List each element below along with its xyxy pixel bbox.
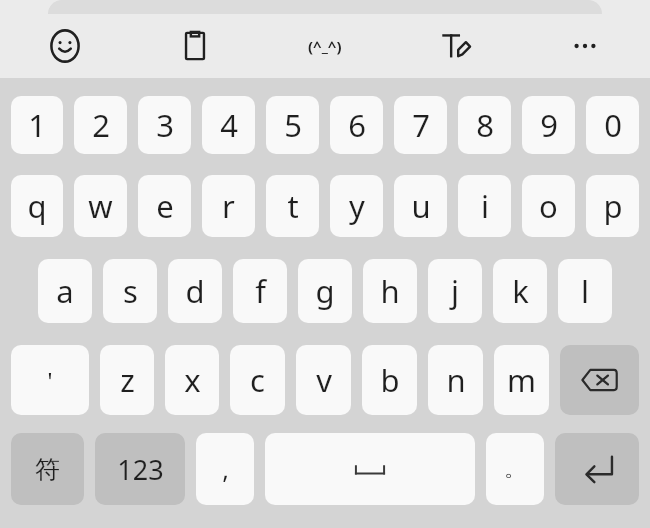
staticText: v bbox=[316, 359, 332, 401]
button[interactable]: Space bbox=[265, 433, 475, 505]
button[interactable]: a bbox=[38, 259, 92, 323]
staticText: 9 bbox=[540, 104, 558, 146]
button[interactable]: More options bbox=[520, 14, 650, 78]
staticText: 。 bbox=[504, 455, 526, 483]
staticText: 0 bbox=[604, 104, 622, 146]
staticText: a bbox=[56, 270, 74, 312]
staticText: 2 bbox=[92, 104, 110, 146]
staticText: 6 bbox=[348, 104, 366, 146]
button[interactable]: s bbox=[103, 259, 157, 323]
button[interactable]: c bbox=[230, 345, 285, 415]
staticText: j bbox=[451, 270, 459, 312]
staticText: q bbox=[27, 185, 47, 227]
staticText: 1 bbox=[28, 104, 46, 146]
staticText: k bbox=[512, 270, 529, 312]
button[interactable]: Clipboard bbox=[130, 14, 260, 78]
staticText: y bbox=[349, 185, 365, 227]
staticText: 符 bbox=[35, 454, 60, 485]
button[interactable]: 。 bbox=[486, 433, 544, 505]
staticText: x bbox=[184, 359, 201, 401]
staticText: f bbox=[255, 270, 266, 312]
staticText: 8 bbox=[476, 104, 494, 146]
staticText: o bbox=[539, 185, 558, 227]
staticText: s bbox=[123, 270, 138, 312]
button[interactable]: i bbox=[458, 175, 511, 237]
staticText: e bbox=[156, 185, 174, 227]
button[interactable]: 2 bbox=[74, 96, 127, 154]
staticText: c bbox=[250, 359, 265, 401]
staticText: (^_^) bbox=[308, 36, 342, 56]
button[interactable]: v bbox=[296, 345, 351, 415]
button[interactable]: p bbox=[586, 175, 639, 237]
button[interactable]: h bbox=[363, 259, 417, 323]
button[interactable]: k bbox=[493, 259, 547, 323]
staticText: z bbox=[120, 359, 135, 401]
staticText: l bbox=[581, 270, 589, 312]
staticText: g bbox=[315, 270, 335, 312]
button[interactable]: 4 bbox=[202, 96, 255, 154]
button[interactable]: z bbox=[100, 345, 154, 415]
button[interactable]: f bbox=[233, 259, 287, 323]
button[interactable]: 5 bbox=[266, 96, 319, 154]
button[interactable]: e bbox=[138, 175, 191, 237]
button[interactable]: 6 bbox=[330, 96, 383, 154]
button[interactable]: b bbox=[362, 345, 417, 415]
button[interactable]: o bbox=[522, 175, 575, 237]
staticText: d bbox=[185, 270, 205, 312]
button[interactable]: 0 bbox=[586, 96, 639, 154]
staticText: i bbox=[481, 185, 489, 227]
button[interactable]: 7 bbox=[394, 96, 447, 154]
button[interactable]: q bbox=[11, 175, 63, 237]
button[interactable]: Emoji bbox=[0, 14, 130, 78]
staticText: 4 bbox=[220, 104, 238, 146]
button[interactable]: 3 bbox=[138, 96, 191, 154]
button[interactable]: 9 bbox=[522, 96, 575, 154]
button[interactable]: d bbox=[168, 259, 222, 323]
button[interactable]: u bbox=[394, 175, 447, 237]
button[interactable]: 符 bbox=[11, 433, 84, 505]
staticText: 123 bbox=[117, 451, 164, 488]
staticText: r bbox=[222, 185, 235, 227]
staticText: n bbox=[446, 359, 466, 401]
staticText: b bbox=[380, 359, 400, 401]
staticText: u bbox=[411, 185, 431, 227]
button[interactable]: g bbox=[298, 259, 352, 323]
button[interactable]: 123 bbox=[95, 433, 185, 505]
staticText: t bbox=[287, 185, 299, 227]
staticText: m bbox=[507, 359, 536, 401]
staticText: ' bbox=[47, 364, 53, 397]
staticText: 5 bbox=[284, 104, 302, 146]
button[interactable]: t bbox=[266, 175, 319, 237]
staticText: w bbox=[88, 185, 113, 227]
button[interactable]: Kaomoji bbox=[260, 14, 390, 78]
button[interactable]: 1 bbox=[11, 96, 63, 154]
button[interactable]: , bbox=[196, 433, 254, 505]
button[interactable]: Enter bbox=[555, 433, 639, 505]
button[interactable]: m bbox=[494, 345, 549, 415]
button[interactable]: Backspace bbox=[560, 345, 639, 415]
staticText: h bbox=[380, 270, 400, 312]
button[interactable]: Handwriting bbox=[390, 14, 520, 78]
staticText: 3 bbox=[156, 104, 174, 146]
button[interactable]: 8 bbox=[458, 96, 511, 154]
button[interactable]: y bbox=[330, 175, 383, 237]
button[interactable]: n bbox=[428, 345, 483, 415]
button[interactable]: ' bbox=[11, 345, 89, 415]
button[interactable]: r bbox=[202, 175, 255, 237]
staticText: , bbox=[222, 452, 229, 486]
staticText: 7 bbox=[412, 104, 430, 146]
button[interactable]: l bbox=[558, 259, 612, 323]
button[interactable]: x bbox=[165, 345, 219, 415]
staticText: p bbox=[603, 185, 623, 227]
button[interactable]: w bbox=[74, 175, 127, 237]
button[interactable]: j bbox=[428, 259, 482, 323]
